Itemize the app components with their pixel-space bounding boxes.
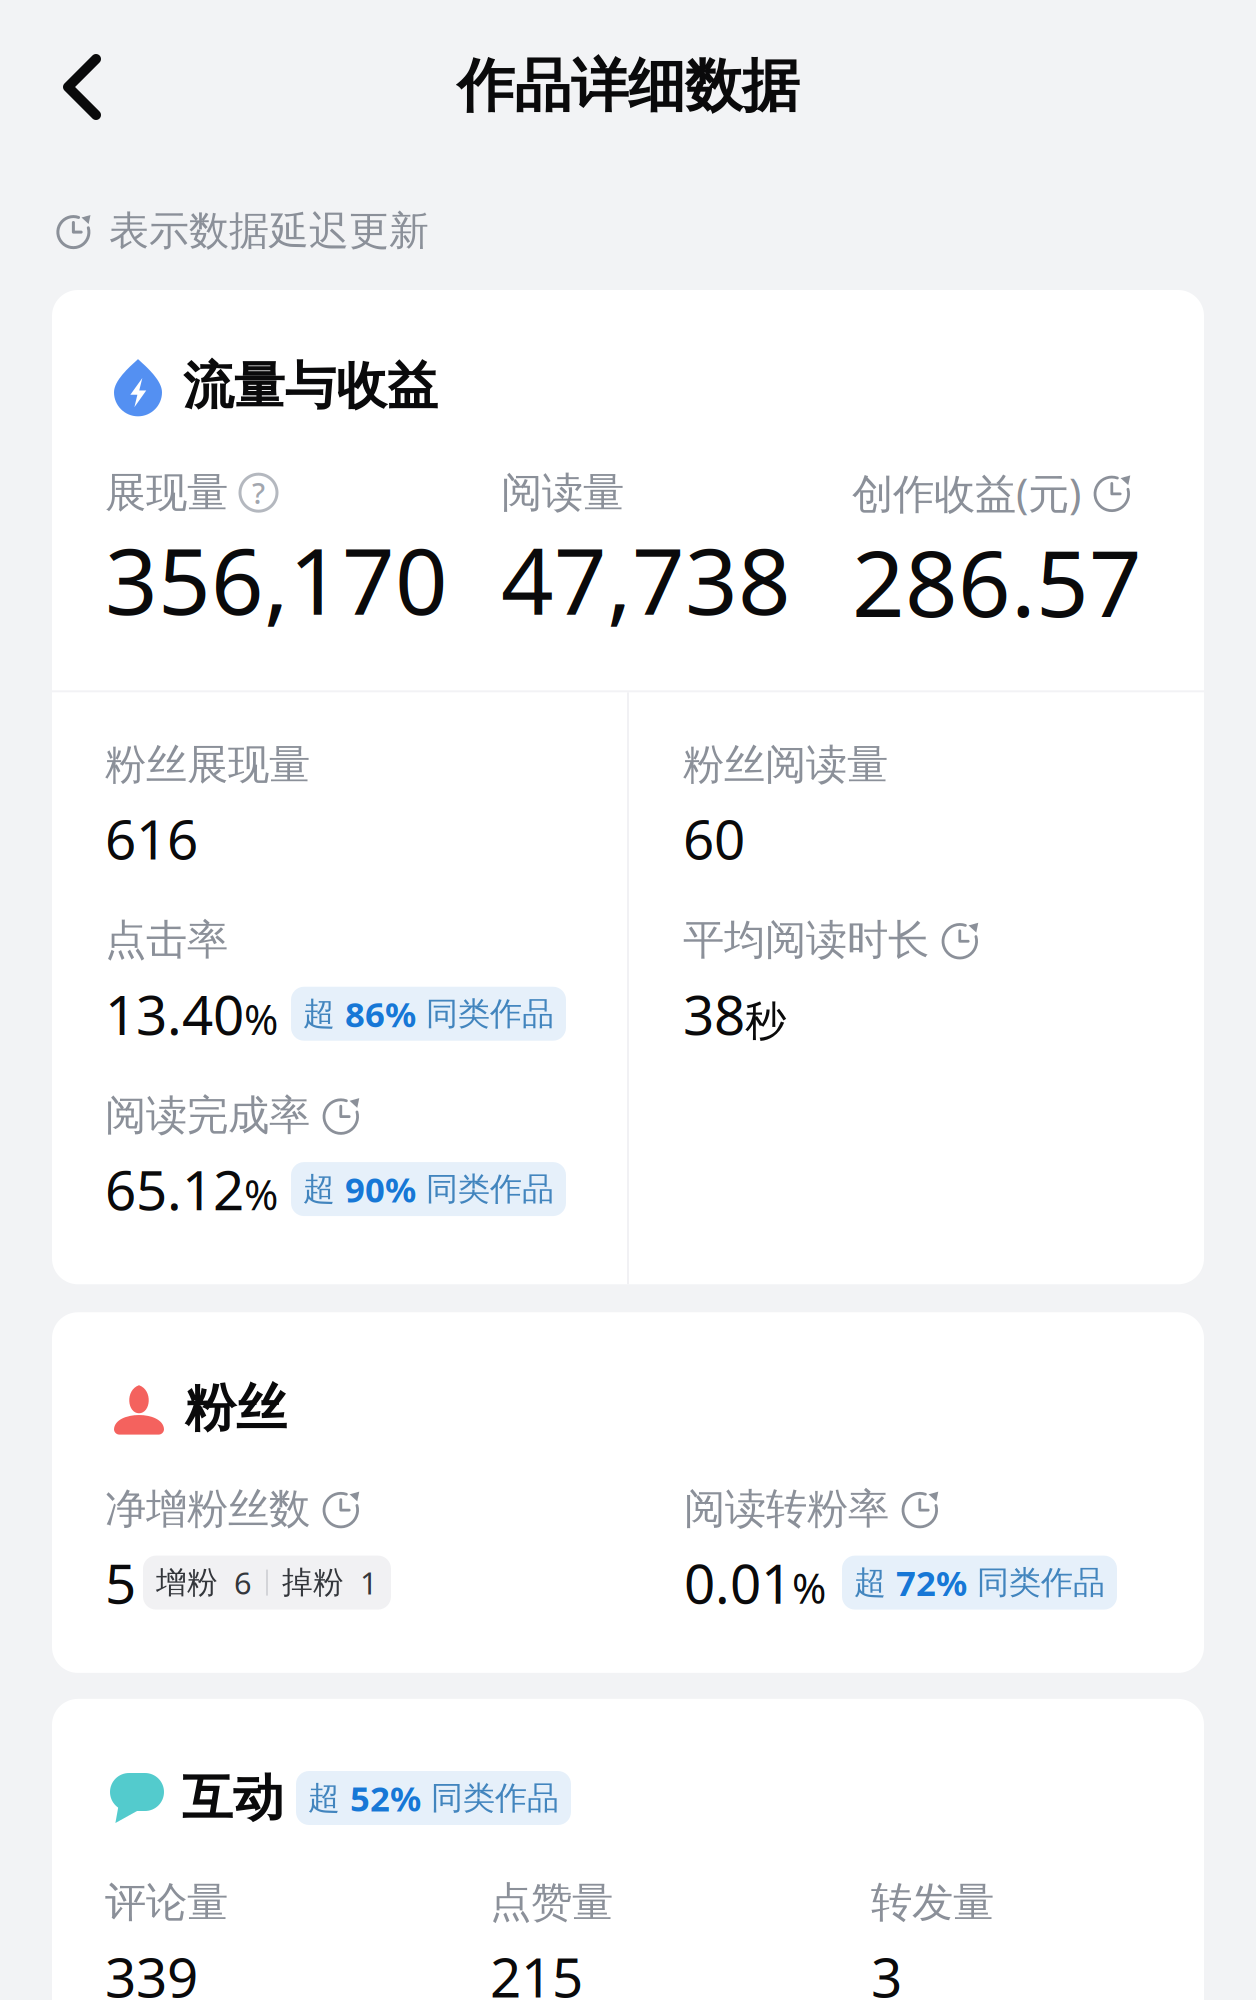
staticText: 0.01 xyxy=(684,1546,792,1619)
staticText: 阅读量 xyxy=(501,467,624,518)
staticText: 356,170 xyxy=(105,518,448,640)
staticText: 平均阅读时长 xyxy=(683,915,929,965)
staticText: 超 xyxy=(303,1169,345,1209)
staticText: 阅读完成率 xyxy=(105,1090,310,1141)
staticText: 点击率 xyxy=(105,915,228,965)
staticText: 作品详细数据 xyxy=(457,51,799,121)
staticText: 掉粉 xyxy=(282,1564,344,1601)
staticText: 超 xyxy=(303,994,345,1033)
staticText: 粉丝展现量 xyxy=(105,739,310,790)
staticText: 同类作品 xyxy=(416,994,554,1033)
staticText: 同类作品 xyxy=(421,1778,559,1818)
staticText: 6 xyxy=(218,1562,252,1603)
staticText: 超 xyxy=(308,1778,350,1818)
staticText: 展现量 xyxy=(105,467,228,518)
staticText: 65.12 xyxy=(105,1153,244,1225)
staticText: 47,738 xyxy=(501,518,791,640)
staticText: 点赞量 xyxy=(490,1877,613,1928)
staticText: 3 xyxy=(871,1940,902,2000)
staticText: 38 xyxy=(683,977,745,1050)
staticText: 超 xyxy=(854,1563,896,1602)
staticText: 粉丝阅读量 xyxy=(683,739,888,790)
staticText: 5 xyxy=(105,1546,136,1619)
staticText: 表示数据延迟更新 xyxy=(109,206,429,255)
staticText: % xyxy=(244,991,278,1046)
staticText: % xyxy=(792,1560,826,1615)
staticText: 秒 xyxy=(745,996,786,1047)
staticText: 52% xyxy=(350,1775,421,1821)
staticText: 增粉 xyxy=(156,1564,218,1601)
staticText: 286.57 xyxy=(852,520,1142,642)
staticText: 互动 xyxy=(182,1767,284,1829)
staticText: 净增粉丝数 xyxy=(105,1483,310,1534)
staticText: 13.40 xyxy=(105,977,244,1050)
staticText: 90% xyxy=(345,1166,416,1212)
staticText: 60 xyxy=(683,802,745,875)
staticText: 粉丝 xyxy=(185,1377,287,1439)
staticText: 转发量 xyxy=(871,1877,994,1928)
staticText: 创作收益(元) xyxy=(852,465,1081,520)
staticText: ? xyxy=(252,473,265,512)
staticText: 1 xyxy=(344,1562,378,1603)
staticText: 72% xyxy=(896,1560,967,1606)
staticText: 616 xyxy=(105,802,198,875)
staticText: 同类作品 xyxy=(416,1169,554,1209)
staticText: 流量与收益 xyxy=(183,355,438,417)
staticText: 86% xyxy=(345,991,416,1037)
staticText: 339 xyxy=(105,1940,198,2000)
staticText: 阅读转粉率 xyxy=(684,1483,889,1534)
staticText: 215 xyxy=(490,1940,583,2000)
button[interactable]: 返回 xyxy=(0,0,135,142)
staticText: 同类作品 xyxy=(967,1563,1105,1602)
staticText: 评论量 xyxy=(105,1877,228,1928)
staticText: % xyxy=(244,1167,278,1222)
